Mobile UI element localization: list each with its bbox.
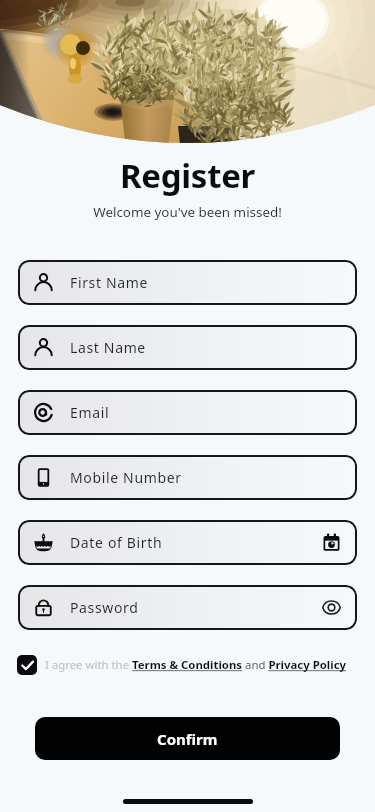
- button[interactable]: First Name: [18, 260, 357, 305]
- staticText: Last Name: [70, 338, 146, 357]
- staticText: Email: [70, 403, 110, 422]
- staticText: Password: [70, 598, 139, 617]
- button[interactable]: Mobile Number: [18, 455, 357, 500]
- staticText: Date of Birth: [70, 533, 163, 552]
- button[interactable]: Date of Birth: [18, 520, 357, 565]
- staticText: First Name: [70, 273, 149, 292]
- button[interactable]: Agree to terms checkbox: [17, 655, 37, 675]
- button[interactable]: Password: [18, 585, 357, 630]
- staticText: Confirm: [157, 729, 218, 749]
- staticText: Mobile Number: [70, 468, 182, 487]
- button[interactable]: Confirm: [35, 717, 340, 760]
- staticText: Register: [0, 153, 375, 198]
- button[interactable]: Last Name: [18, 325, 357, 370]
- staticText: Welcome you've been missed!: [0, 203, 375, 221]
- button[interactable]: Email: [18, 390, 357, 435]
- staticText: I agree with the Terms & Conditions and …: [45, 657, 347, 673]
